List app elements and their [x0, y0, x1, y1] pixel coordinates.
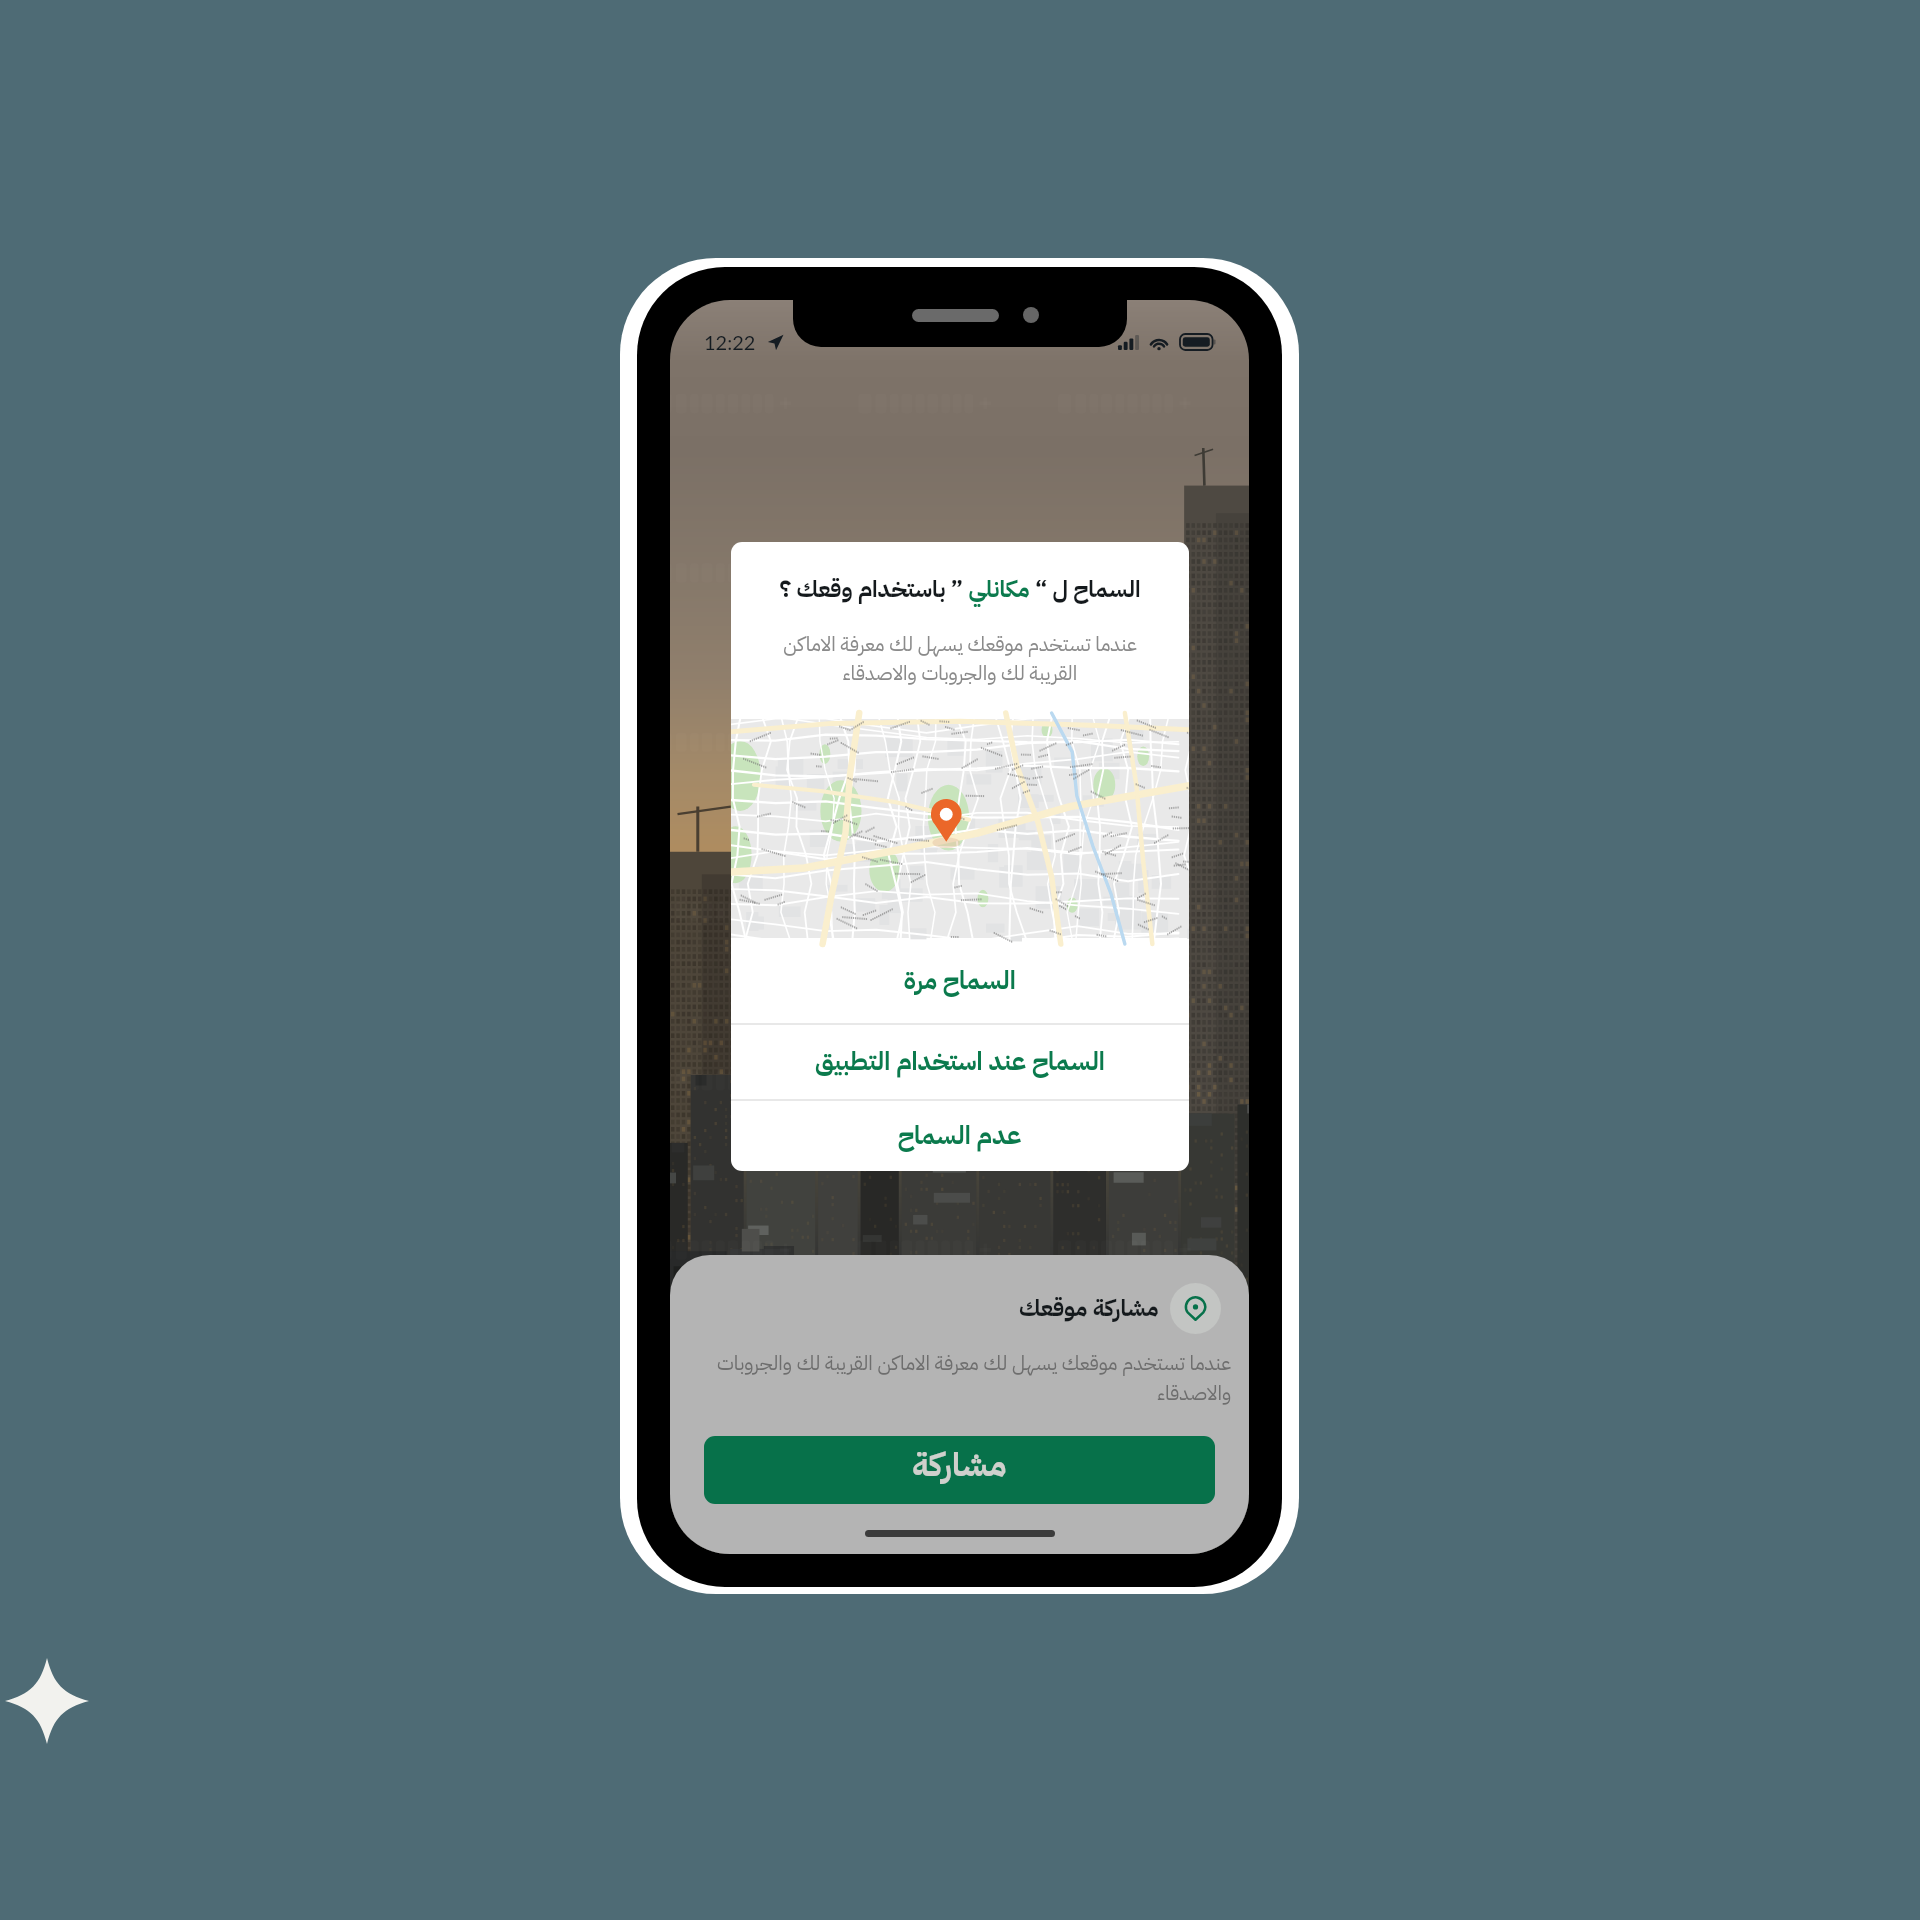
button[interactable]: السماح عند استخدام التطبيق — [731, 1025, 1189, 1099]
staticText: مشاركة موقعك — [1019, 1291, 1159, 1326]
staticText: السماح مرة — [904, 962, 1016, 1000]
button[interactable]: Share your location — [1170, 1283, 1221, 1334]
button[interactable]: مشاركة — [704, 1436, 1215, 1504]
other: Sparkle — [5, 1658, 89, 1744]
staticText: 12:22 — [704, 330, 756, 354]
staticText: السماح عند استخدام التطبيق — [815, 1043, 1105, 1081]
other: Location — [1183, 1296, 1208, 1321]
staticText: مشاركة — [912, 1440, 1007, 1490]
staticText: عندما تستخدم موقعك يسهل لك معرفة الاماكن… — [775, 629, 1145, 688]
button[interactable]: عدم السماح — [731, 1101, 1189, 1171]
staticText: عدم السماح — [898, 1117, 1022, 1155]
button[interactable]: السماح مرة — [731, 938, 1189, 1023]
staticText: عندما تستخدم موقعك يسهل لك معرفة الاماكن… — [688, 1348, 1231, 1408]
staticText: السماح ل “ مكانلي ” باستخدام وقعك ؟ — [751, 572, 1169, 607]
